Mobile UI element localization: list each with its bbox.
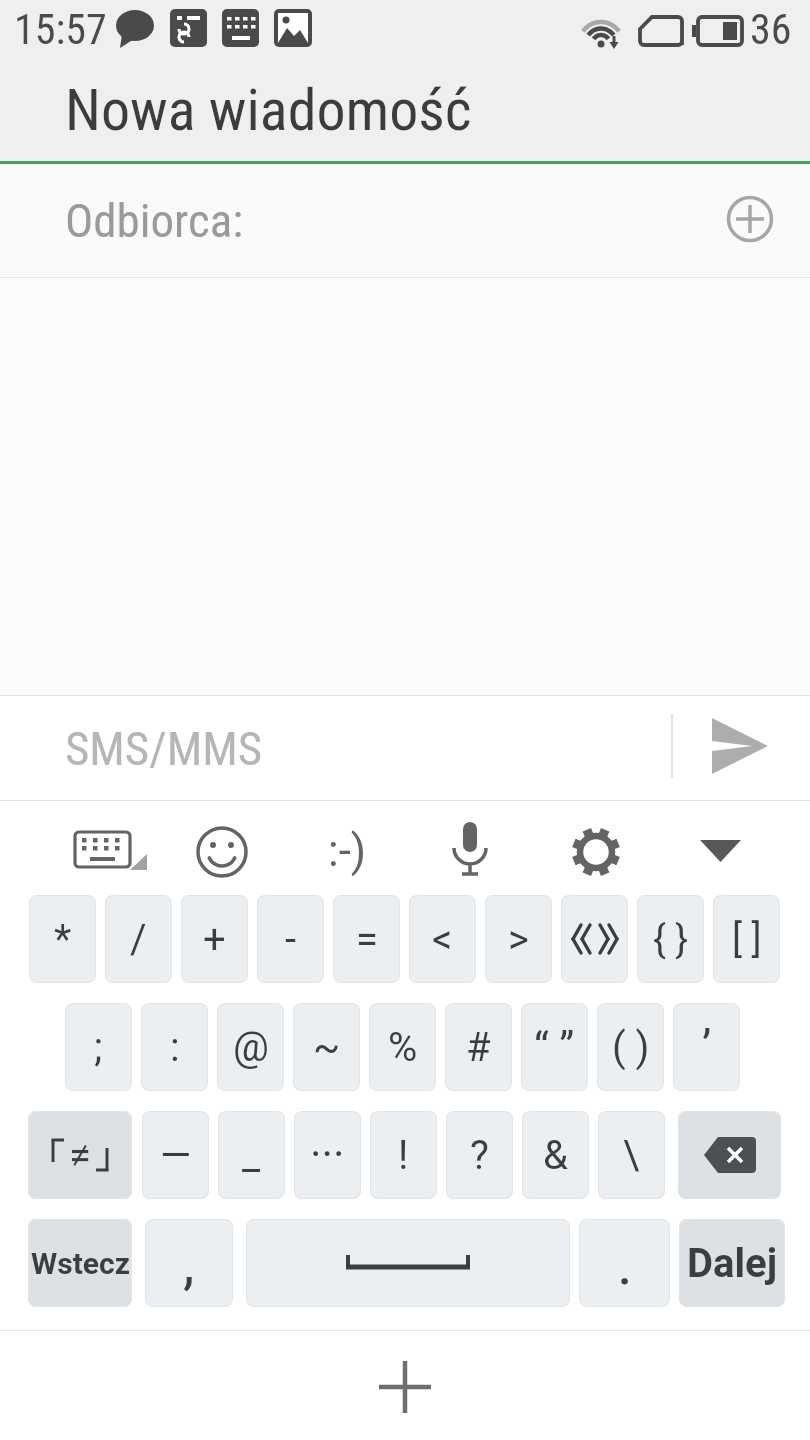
staticText: - [285, 916, 297, 963]
staticText: { } [653, 917, 689, 962]
button[interactable] [452, 822, 488, 882]
staticText: ≠ [69, 1132, 91, 1179]
button[interactable] [72, 826, 150, 882]
staticText: & [543, 1132, 568, 1179]
button[interactable]: : [141, 1003, 208, 1091]
button[interactable]: , [145, 1219, 233, 1307]
button[interactable] [570, 826, 622, 878]
button[interactable]: { } [637, 895, 704, 983]
button[interactable]: # [445, 1003, 512, 1091]
button[interactable]: ··· [294, 1111, 361, 1199]
button[interactable] [377, 1359, 433, 1415]
button[interactable]: ! [370, 1111, 437, 1199]
button[interactable]: Odbiorca: [0, 164, 810, 277]
staticText: > [508, 916, 529, 963]
button[interactable]: * [29, 895, 96, 983]
staticText: 15:57 [14, 5, 107, 54]
button[interactable]: “ ” [521, 1003, 588, 1091]
button[interactable]: ≠ [28, 1111, 132, 1199]
button[interactable] [561, 895, 628, 983]
staticText: # [466, 1024, 491, 1071]
button[interactable]: [ ] [713, 895, 780, 983]
staticText: Odbiorca: [65, 193, 244, 248]
staticText: — [160, 1132, 192, 1179]
button[interactable]: . [579, 1219, 670, 1307]
staticText: ! [398, 1132, 409, 1179]
button[interactable]: :-) [310, 814, 384, 888]
staticText: _ [242, 1132, 261, 1179]
staticText: + [203, 916, 226, 963]
staticText: * [54, 916, 72, 963]
staticText: ? [470, 1132, 489, 1179]
button[interactable] [196, 826, 248, 878]
button[interactable]: ( ) [597, 1003, 664, 1091]
button[interactable]: ; [65, 1003, 132, 1091]
staticText: Wstecz [31, 1246, 130, 1281]
staticText: : [170, 1024, 180, 1071]
button[interactable] [727, 196, 773, 242]
staticText: ~ [313, 1024, 341, 1071]
button[interactable]: ~ [293, 1003, 360, 1091]
staticText: ( ) [612, 1024, 650, 1071]
staticText: 36 [750, 5, 792, 54]
staticText: < [432, 916, 453, 963]
button[interactable]: / [105, 895, 172, 983]
staticText: % [388, 1024, 418, 1071]
staticText: ’ [702, 1020, 712, 1074]
staticText: [ ] [732, 917, 762, 962]
button[interactable]: & [522, 1111, 589, 1199]
button[interactable]: + [181, 895, 248, 983]
button[interactable]: > [485, 895, 552, 983]
button[interactable]: Wstecz [28, 1219, 132, 1307]
button[interactable]: Dalej [679, 1219, 785, 1307]
button[interactable] [700, 826, 746, 878]
button[interactable]: = [333, 895, 400, 983]
staticText: . [617, 1228, 633, 1298]
staticText: SMS/MMS [65, 721, 263, 776]
button[interactable]: @ [217, 1003, 284, 1091]
staticText: ··· [310, 1129, 345, 1181]
staticText: \ [623, 1132, 640, 1179]
staticText: , [183, 1229, 195, 1297]
staticText: “ ” [534, 1023, 575, 1072]
button[interactable]: % [369, 1003, 436, 1091]
button[interactable] [710, 718, 772, 776]
button[interactable]: SMS/MMS [0, 696, 810, 800]
button[interactable]: _ [218, 1111, 285, 1199]
staticText: = [356, 916, 378, 963]
staticText: @ [233, 1024, 269, 1071]
button[interactable]: - [257, 895, 324, 983]
button[interactable]: ? [446, 1111, 513, 1199]
button[interactable]: ’ [673, 1003, 740, 1091]
staticText: ; [94, 1024, 103, 1071]
button[interactable]: < [409, 895, 476, 983]
button[interactable]: \ [598, 1111, 665, 1199]
button[interactable] [678, 1111, 781, 1199]
button[interactable]: — [142, 1111, 209, 1199]
button[interactable] [246, 1219, 570, 1307]
staticText: :-) [328, 825, 367, 877]
staticText: Nowa wiadomość [65, 76, 472, 144]
staticText: / [130, 916, 147, 963]
staticText: Dalej [687, 1240, 778, 1287]
